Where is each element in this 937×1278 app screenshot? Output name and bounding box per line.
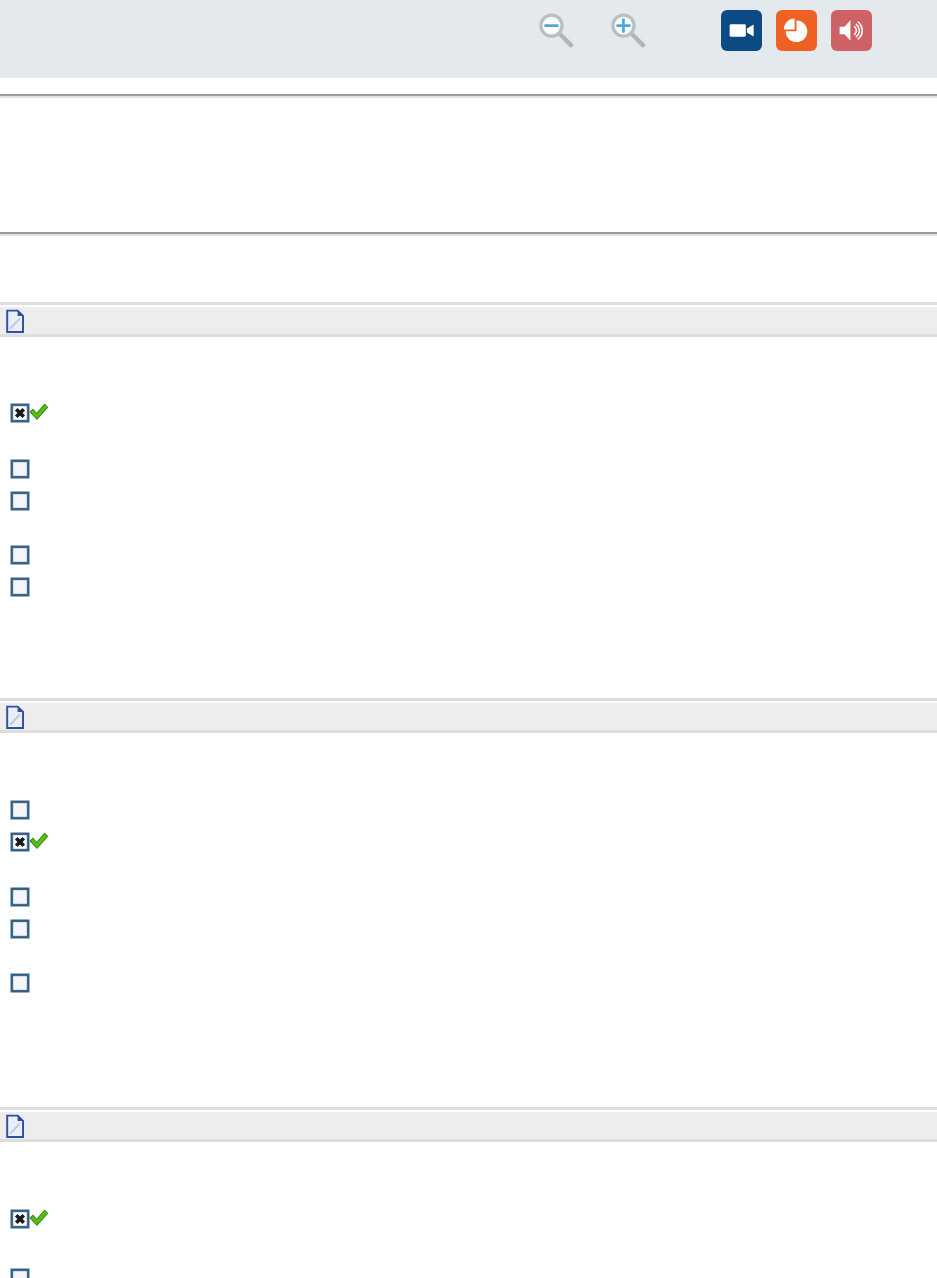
button[interactable]: Page [5,308,27,334]
button[interactable]: Unchecked option [0,573,937,598]
button[interactable]: Zoom in [605,8,649,52]
button[interactable]: Page [5,1113,27,1139]
button[interactable]: Chart [776,10,817,51]
button[interactable]: Sound [831,10,872,51]
button[interactable]: Unchecked option [0,883,937,908]
button[interactable]: Unchecked option [0,541,937,566]
button[interactable]: Checked option [0,399,937,424]
button[interactable]: Unchecked option [0,796,937,821]
button[interactable]: Unchecked option [0,455,937,480]
button[interactable]: Checked option [0,1205,937,1230]
button[interactable]: Page [5,704,27,730]
button[interactable]: Unchecked option [0,915,937,940]
button[interactable]: Zoom out [533,8,577,52]
button[interactable]: Unchecked option [0,969,937,994]
button[interactable]: Unchecked option [0,1264,937,1278]
button[interactable]: Video [721,10,762,51]
button[interactable]: Unchecked option [0,487,937,512]
button[interactable]: Checked option [0,828,937,853]
